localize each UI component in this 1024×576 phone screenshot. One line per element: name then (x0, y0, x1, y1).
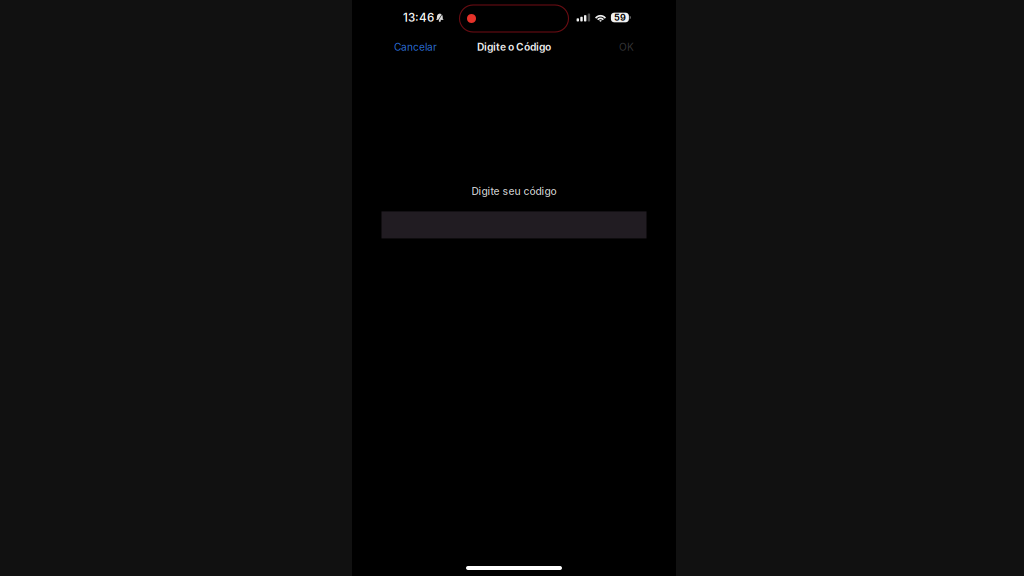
staticText: Cancelar (394, 41, 437, 53)
staticText: Digite seu código (471, 185, 556, 197)
staticText: OK (619, 41, 634, 53)
staticText: 13:46 (403, 11, 434, 24)
staticText: 59 (614, 12, 626, 23)
staticText: Digite o Código (477, 41, 551, 53)
button[interactable]: Cancelar (386, 35, 445, 59)
button[interactable]: OK (611, 35, 642, 59)
